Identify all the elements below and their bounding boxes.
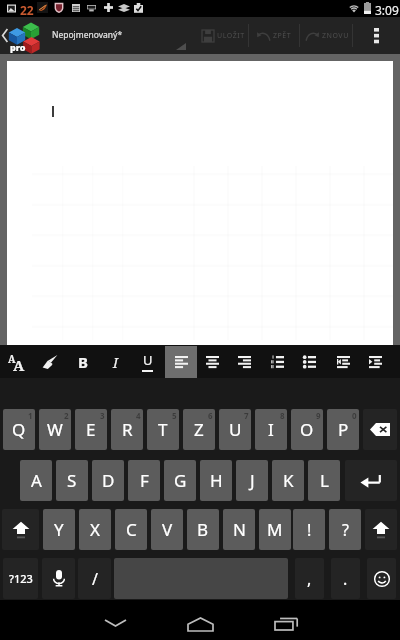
staticText: A [8,352,16,366]
button[interactable]: Navigate up [0,17,48,54]
button[interactable]: U [219,409,251,450]
staticText: D [102,469,115,492]
staticText: K [283,469,294,492]
staticText: B [78,352,88,372]
button[interactable]: B [187,509,219,550]
staticText: , [307,568,312,590]
button[interactable]: I [255,409,287,450]
button[interactable]: C [115,509,147,550]
button[interactable]: P [327,409,359,450]
staticText: 7 [244,410,249,421]
staticText: V [162,518,173,541]
staticText: ? [342,519,349,541]
staticText: ZPĚT [273,31,292,41]
button[interactable]: Align center [196,345,229,378]
button[interactable]: Numbered list [261,345,294,378]
staticText: T [158,418,168,441]
staticText: 2 [64,410,69,421]
button[interactable]: Highlight [33,345,66,378]
button[interactable]: Voice input [42,558,75,599]
staticText: A [31,469,42,492]
staticText: . [343,568,348,590]
staticText: 4 [136,410,141,421]
staticText: H [210,469,223,492]
button[interactable]: Underline [131,345,164,378]
staticText: A [13,355,25,372]
staticText: 9 [316,410,321,421]
staticText: Y [54,518,64,541]
button[interactable]: Increase indent [359,345,392,378]
button[interactable]: Y [43,509,75,550]
staticText: N [233,518,246,541]
staticText: 3 [100,410,105,421]
staticText: 0 [352,410,357,421]
staticText: W [47,418,63,441]
staticText: ?123 [9,571,33,586]
button[interactable]: M [259,509,291,550]
button[interactable]: Home [172,600,229,640]
button[interactable]: Recent apps [258,600,315,640]
button[interactable]: Z [183,409,215,450]
button[interactable]: A [20,460,52,501]
staticText: I [113,352,118,372]
staticText: ULOŽIT [217,31,245,41]
button[interactable]: V [151,509,183,550]
staticText: X [90,518,100,541]
button[interactable]: O [291,409,323,450]
staticText: pro [10,41,26,53]
button[interactable]: Bulleted list [293,345,326,378]
button[interactable]: T [147,409,179,450]
button[interactable]: H [200,460,232,501]
button[interactable]: K [272,460,304,501]
button[interactable]: R [111,409,143,450]
button[interactable]: W [39,409,71,450]
button[interactable]: E [75,409,107,450]
button[interactable]: J [236,460,268,501]
button[interactable]: Q [3,409,35,450]
staticText: L [320,469,329,492]
button[interactable]: ! [293,509,325,550]
button[interactable]: Italic [99,345,132,378]
button[interactable]: Font size [0,345,33,378]
staticText: S [67,469,77,492]
button[interactable]: , [295,558,324,599]
button[interactable]: G [164,460,196,501]
button[interactable]: N [223,509,255,550]
button[interactable]: ?123 [3,558,38,599]
button[interactable]: . [331,558,360,599]
staticText: J [250,469,255,492]
staticText: 1 [28,410,33,421]
button[interactable]: Enter [345,460,397,501]
button[interactable]: D [92,460,124,501]
button[interactable]: Align left [165,345,198,378]
button[interactable]: Undo [251,17,298,54]
button[interactable]: Align right [228,345,261,378]
staticText: P [338,418,349,441]
staticText: ! [307,519,312,541]
button[interactable]: Backspace [363,409,397,450]
button[interactable]: Shift [2,509,39,550]
button[interactable]: X [79,509,111,550]
staticText: 6 [208,410,213,421]
staticText: 22 [20,2,34,18]
staticText: 8 [280,410,285,421]
button[interactable]: S [56,460,88,501]
button[interactable]: Bold [66,345,99,378]
staticText: Q [12,418,26,441]
button[interactable]: Decrease indent [327,345,360,378]
button[interactable]: Emoji [367,558,396,599]
button[interactable]: Redo [302,17,352,54]
button[interactable]: ? [329,509,361,550]
button[interactable]: / [78,558,111,599]
button[interactable]: Shift [365,509,397,550]
staticText: E [86,418,96,441]
staticText: U [229,418,242,441]
button[interactable]: L [308,460,340,501]
button[interactable]: More options [360,17,392,54]
button[interactable]: Hide keyboard [87,600,144,640]
button[interactable]: F [128,460,160,501]
staticText: G [174,469,187,492]
button[interactable]: Save [198,17,248,54]
staticText: 3:09 [375,2,399,18]
